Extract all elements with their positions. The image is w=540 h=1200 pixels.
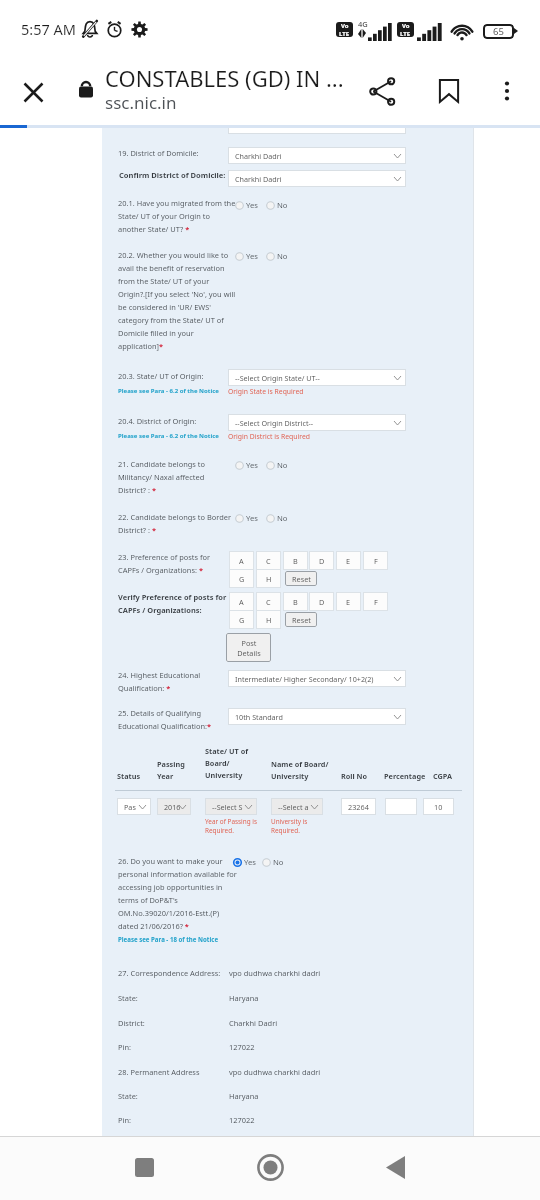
button[interactable]: H [256,610,281,629]
button[interactable]: No [266,251,288,261]
button[interactable]: Reset [285,612,317,627]
button[interactable]: D [309,551,334,570]
staticText: Percentage [384,771,426,781]
button[interactable]: 10 [423,798,454,815]
button[interactable]: Yes [235,200,258,210]
staticText: G [239,615,245,625]
button[interactable]: Close [13,72,53,112]
staticText: D [319,556,325,566]
staticText: 24. Highest Educational Qualification: * [118,670,237,693]
staticText: 25. Details of Qualifying Educational Qu… [118,708,237,731]
staticText: E [346,597,351,607]
staticText: G [239,574,245,584]
button[interactable]: Recent apps [122,1145,166,1189]
staticText: Please see Para - 6.2 of the Notice [118,387,219,395]
staticText: 19. District of Domicile: [118,148,237,158]
staticText: Vo [402,22,410,30]
staticText: H [266,574,272,584]
button[interactable]: B [283,551,308,570]
button[interactable]: Bookmark [427,69,471,113]
button[interactable]: Charkhi Dadri [228,147,406,164]
staticText: 20.4. District of Origin: [118,416,237,426]
button[interactable]: E [336,551,361,570]
staticText: Yes [246,460,258,470]
staticText: ssc.nic.in [105,91,177,114]
staticText: University is Required. [271,817,326,835]
button[interactable] [385,798,417,815]
button[interactable]: No [266,460,288,470]
button[interactable]: G [229,569,254,588]
staticText: No [277,513,288,523]
staticText: --Select Origin State/ UT-- [235,373,320,383]
button[interactable]: Yes [233,857,256,867]
staticText: State: [118,1091,138,1101]
button[interactable]: A [229,592,254,611]
staticText: Status [117,771,141,781]
staticText: Pin: [118,1115,132,1125]
staticText: 20.3. State/ UT of Origin: [118,371,237,381]
staticText: C [266,556,271,566]
button[interactable]: 23264 [341,798,376,815]
staticText: Intermediate/ Higher Secondary/ 10+2(2) [235,674,374,684]
staticText: Yes [246,251,258,261]
button[interactable]: C [256,592,281,611]
staticText: 20.2. Whether you would like to avail th… [118,250,237,351]
staticText: No [277,460,288,470]
button[interactable]: F [363,592,388,611]
button[interactable]: F [363,551,388,570]
staticText: 127022 [229,1042,255,1052]
button[interactable]: A [229,551,254,570]
staticText: 21. Candidate belongs to Militancy/ Naxa… [118,459,237,495]
button[interactable]: Yes [235,513,258,523]
button[interactable]: --Select Origin District-- [228,414,406,431]
button[interactable]: No [266,513,288,523]
staticText: Yes [244,857,256,867]
button[interactable]: More options [485,69,529,113]
staticText: B [293,556,298,566]
button[interactable]: Yes [235,460,258,470]
button[interactable]: Home [248,1145,292,1189]
button[interactable]: C [256,551,281,570]
staticText: 23. Preference of posts for CAPFs / Orga… [118,552,237,575]
staticText: No [277,200,288,210]
staticText: 27. Correspondence Address: [118,968,221,978]
button[interactable]: H [256,569,281,588]
staticText: Charkhi Dadri [229,1018,278,1028]
staticText: Please see Para - 18 of the Notice [118,935,219,943]
button[interactable]: Post Details [226,633,271,662]
button[interactable]: 10th Standard [228,708,406,725]
button[interactable]: --Select S [205,798,257,815]
staticText: 26. Do you want to make your personal in… [118,856,237,931]
button[interactable]: E [336,592,361,611]
button[interactable]: D [309,592,334,611]
staticText: 23264 [348,802,369,812]
staticText: H [266,615,272,625]
button[interactable]: Share [360,69,404,113]
button[interactable]: --Select Origin State/ UT-- [228,369,406,386]
button[interactable]: Intermediate/ Higher Secondary/ 10+2(2) [228,670,406,687]
button[interactable]: B [283,592,308,611]
staticText: Vo [341,22,349,30]
button[interactable]: No [262,857,284,867]
staticText: District: [118,1018,145,1028]
button[interactable]: 2016 [157,798,191,815]
button[interactable]: Pas [117,798,151,815]
button[interactable]: No [266,200,288,210]
staticText: Pas [124,802,136,812]
staticText: 127022 [229,1115,255,1125]
staticText: Pin: [118,1042,132,1052]
staticText: C [266,597,271,607]
staticText: Origin District is Required [228,432,310,441]
staticText: B [293,597,298,607]
button[interactable]: Charkhi Dadri [228,170,406,187]
staticText: Origin State is Required [228,387,304,396]
button[interactable]: Reset [285,571,317,586]
staticText: Year of Passing is Required. [205,817,260,835]
button[interactable]: Back [373,1145,417,1189]
button[interactable]: G [229,610,254,629]
staticText: LTE [339,30,350,37]
staticText: --Select Origin District-- [235,418,314,428]
button[interactable]: --Select a [271,798,323,815]
staticText: No [277,251,288,261]
button[interactable]: Yes [235,251,258,261]
